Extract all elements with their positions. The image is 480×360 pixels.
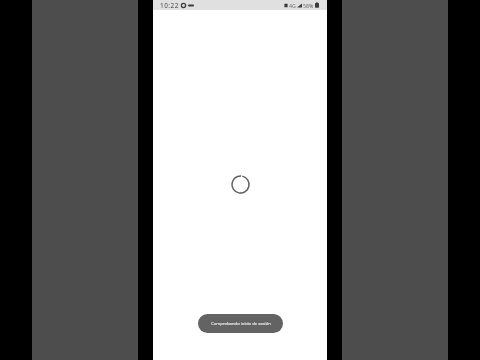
other: Loading bbox=[230, 174, 251, 195]
other: Do not disturb bbox=[181, 3, 186, 8]
other: Mobile data bbox=[284, 3, 288, 8]
button[interactable]: Comprobando inicio de sesión bbox=[198, 314, 283, 333]
other: Signal strength bbox=[297, 3, 302, 8]
other: Battery 58 percent bbox=[315, 2, 319, 8]
staticText: 58% bbox=[303, 2, 314, 9]
staticText: Comprobando inicio de sesión bbox=[211, 321, 271, 327]
staticText: 10:22 bbox=[160, 1, 179, 10]
other: Silent mode bbox=[188, 3, 194, 8]
staticText: 4G bbox=[289, 2, 296, 9]
